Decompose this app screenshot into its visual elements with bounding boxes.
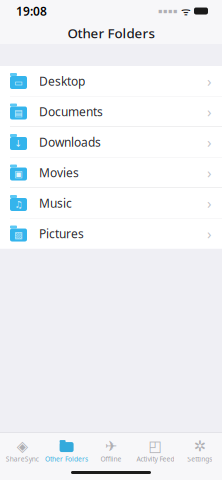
button[interactable]: ✲ (178, 435, 222, 463)
staticText: ✈ (105, 438, 117, 454)
staticText: ◰ (148, 438, 162, 454)
staticText: › (207, 224, 212, 243)
staticText: › (207, 163, 212, 182)
button[interactable]: ↓ (0, 127, 222, 157)
button[interactable]: Other Folders (44, 435, 89, 463)
staticText: Movies (39, 164, 79, 180)
staticText: Documents (39, 103, 103, 119)
button[interactable]: ♫ (0, 188, 222, 218)
staticText: ᯤ (178, 4, 191, 18)
staticText: Other Folders (67, 24, 154, 42)
staticText: 19:08 (16, 3, 47, 19)
staticText: ▭ (14, 77, 23, 88)
button[interactable]: ✈ (89, 435, 133, 463)
staticText: › (207, 102, 212, 121)
staticText: › (207, 132, 212, 152)
staticText: Downloads (39, 134, 101, 150)
staticText: › (207, 71, 212, 91)
staticText: Activity Feed (136, 455, 174, 463)
staticText: ♫ (14, 199, 22, 210)
staticText: Desktop (39, 73, 85, 89)
staticText: Pictures (39, 225, 84, 241)
staticText: Offline (100, 455, 121, 463)
button[interactable]: ▣ (0, 157, 222, 187)
staticText: ▣ (14, 169, 23, 179)
staticText: › (207, 193, 212, 213)
button[interactable]: ◈ (0, 435, 44, 463)
staticText: ◈ (17, 438, 28, 454)
staticText: Music (39, 195, 72, 211)
staticText: Settings (187, 455, 212, 463)
staticText: ▤ (14, 108, 23, 118)
staticText: ▪▪▪▪ (158, 7, 178, 15)
button[interactable]: ▨ (0, 218, 222, 248)
staticText: ✲ (194, 438, 206, 454)
staticText: ↓ (14, 138, 22, 149)
staticText: Other Folders (45, 455, 88, 463)
staticText: ShareSync (6, 455, 39, 463)
staticText: ▨ (14, 230, 23, 240)
button[interactable]: ◰ (133, 435, 178, 463)
button[interactable]: ▭ (0, 66, 222, 96)
button[interactable]: ▤ (0, 96, 222, 126)
